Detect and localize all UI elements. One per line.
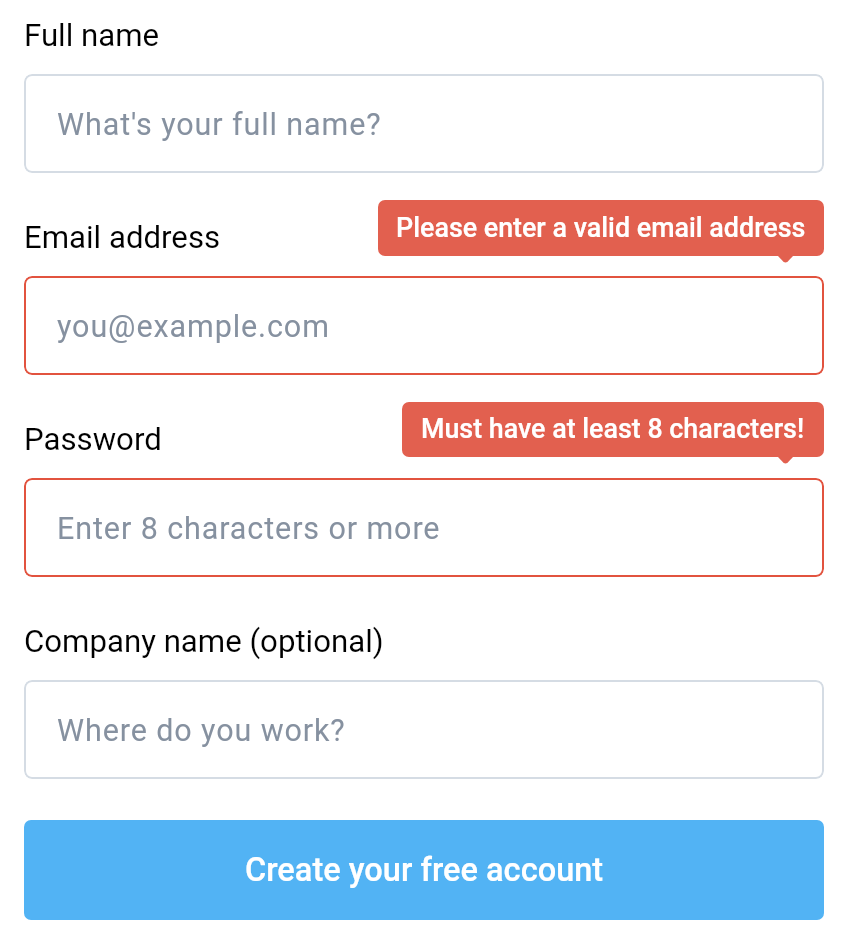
- button[interactable]: What's your full name?: [24, 74, 824, 173]
- staticText: Password: [24, 421, 162, 458]
- staticText: Create your free account: [245, 851, 604, 889]
- staticText: Where do you work?: [57, 713, 346, 749]
- staticText: Must have at least 8 characters!: [421, 413, 805, 444]
- staticText: Company name (optional): [24, 623, 384, 660]
- button[interactable]: Enter 8 characters or more: [24, 478, 824, 577]
- staticText: Full name: [24, 17, 160, 54]
- other: Validation error: [778, 256, 793, 263]
- button[interactable]: you@example.com: [24, 276, 824, 375]
- staticText: Email address: [24, 219, 221, 256]
- other: Validation error: [778, 457, 793, 464]
- staticText: What's your full name?: [57, 107, 382, 143]
- staticText: Please enter a valid email address: [396, 212, 806, 243]
- staticText: Enter 8 characters or more: [57, 511, 441, 547]
- staticText: you@example.com: [57, 309, 330, 345]
- button[interactable]: Create your free account: [24, 820, 824, 920]
- button[interactable]: Where do you work?: [24, 680, 824, 779]
